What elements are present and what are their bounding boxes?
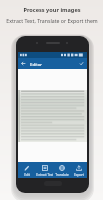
button[interactable]: Back xyxy=(18,58,29,69)
button[interactable]: Export xyxy=(70,162,87,178)
staticText: Translate xyxy=(55,173,69,177)
staticText: Extract Text, Translate or Export them xyxy=(6,17,98,24)
button[interactable]: Done xyxy=(76,58,87,69)
staticText: Edit xyxy=(24,173,30,177)
staticText: Export xyxy=(74,173,84,177)
button[interactable]: Translate xyxy=(53,162,70,178)
staticText: Process your images xyxy=(23,6,81,14)
button[interactable]: Edit xyxy=(18,162,36,178)
button[interactable]: Extract Text xyxy=(36,162,53,178)
staticText: Editor xyxy=(30,61,43,67)
staticText: Extract Text xyxy=(36,173,53,177)
